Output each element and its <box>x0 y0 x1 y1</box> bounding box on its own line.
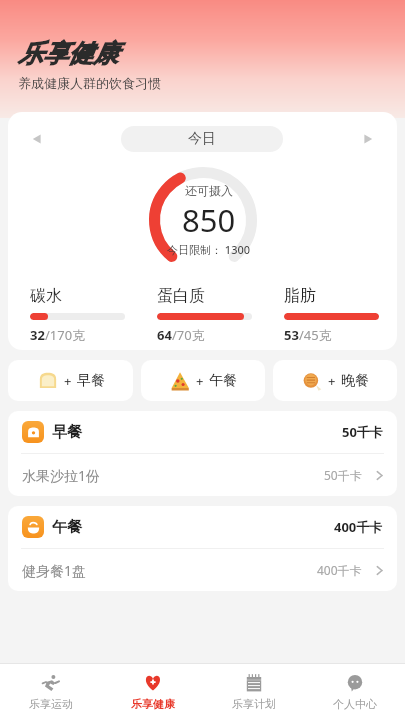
staticText: + <box>64 372 72 390</box>
staticText: 午餐 <box>209 372 237 390</box>
staticText: 400千卡 <box>334 518 383 536</box>
staticText: 850 <box>182 199 236 241</box>
staticText: /45克 <box>299 326 332 344</box>
staticText: 400千卡 <box>317 562 362 578</box>
staticText: 午餐 <box>52 518 82 537</box>
staticText: 个人中心 <box>333 697 377 711</box>
button[interactable]: 今日 <box>121 126 283 152</box>
staticText: 碳水 <box>30 286 62 306</box>
staticText: 晚餐 <box>341 372 369 390</box>
button[interactable]: 个人中心 <box>304 664 405 720</box>
staticText: /170克 <box>45 326 86 344</box>
button[interactable]: 早餐 <box>8 411 397 453</box>
staticText: 早餐 <box>77 372 105 390</box>
staticText: 今日 <box>188 130 216 148</box>
staticText: 蛋白质 <box>157 286 205 306</box>
staticText: 养成健康人群的饮食习惯 <box>18 75 161 91</box>
staticText: 50千卡 <box>342 423 383 441</box>
button[interactable]: Previous day <box>24 126 50 152</box>
staticText: 健身餐1盘 <box>22 561 87 580</box>
staticText: + <box>196 372 204 390</box>
staticText: 脂肪 <box>284 286 316 306</box>
staticText: 早餐 <box>52 423 82 442</box>
staticText: 水果沙拉1份 <box>22 466 101 485</box>
staticText: /70克 <box>172 326 205 344</box>
button[interactable]: 乐享计划 <box>203 664 304 720</box>
button[interactable]: 乐享运动 <box>0 664 102 720</box>
button[interactable]: 健身餐1盘 <box>8 549 397 591</box>
staticText: 还可摄入 <box>185 183 233 198</box>
staticText: + <box>328 372 336 390</box>
button[interactable]: 乐享健康 <box>102 664 203 720</box>
staticText: 乐享健康 <box>131 697 175 711</box>
staticText: 64 <box>157 326 172 344</box>
button[interactable]: 水果沙拉1份 <box>8 454 397 496</box>
staticText: 今日限制： 1300 <box>167 242 251 257</box>
staticText: 乐享运动 <box>29 697 73 711</box>
button[interactable]: + <box>273 360 397 401</box>
staticText: 32 <box>30 326 45 344</box>
button[interactable]: Next day <box>355 126 381 152</box>
button[interactable]: 午餐 <box>8 506 397 548</box>
staticText: 乐享健康 <box>18 38 118 69</box>
staticText: 乐享计划 <box>232 697 276 711</box>
button[interactable]: + <box>141 360 265 401</box>
button[interactable]: + <box>8 360 133 401</box>
staticText: 50千卡 <box>324 467 362 483</box>
staticText: 53 <box>284 326 299 344</box>
